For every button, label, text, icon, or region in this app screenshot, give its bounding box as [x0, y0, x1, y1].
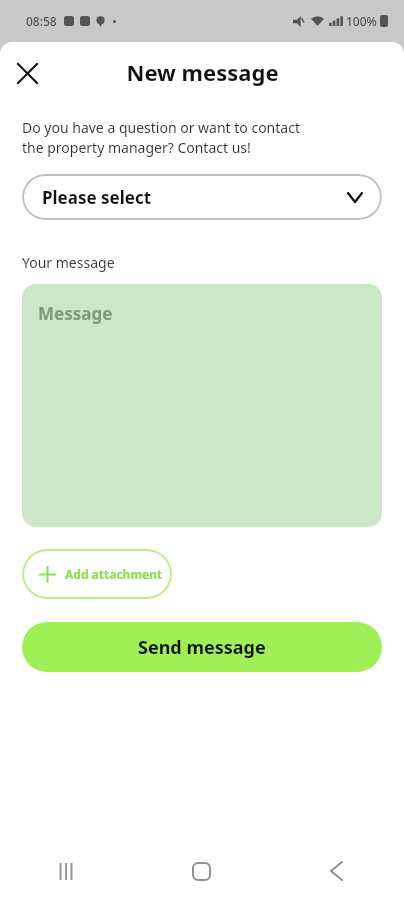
- button[interactable]: Back: [269, 842, 404, 900]
- button[interactable]: Add attachment: [22, 549, 172, 599]
- staticText: Message: [38, 302, 113, 325]
- staticText: Add attachment: [65, 566, 163, 582]
- button[interactable]: Home: [134, 842, 269, 900]
- staticText: Do you have a question or want to contac…: [22, 118, 300, 158]
- staticText: Your message: [22, 253, 115, 272]
- staticText: Send message: [138, 635, 266, 660]
- staticText: 08:58: [26, 13, 57, 29]
- button[interactable]: Close: [6, 52, 48, 94]
- staticText: Please select: [42, 186, 152, 209]
- button[interactable]: Please select: [22, 174, 382, 220]
- button[interactable]: Message: [22, 284, 382, 527]
- staticText: New message: [126, 57, 279, 87]
- button[interactable]: Recents: [0, 842, 134, 900]
- staticText: 100%: [346, 13, 377, 29]
- button[interactable]: Send message: [22, 622, 382, 672]
